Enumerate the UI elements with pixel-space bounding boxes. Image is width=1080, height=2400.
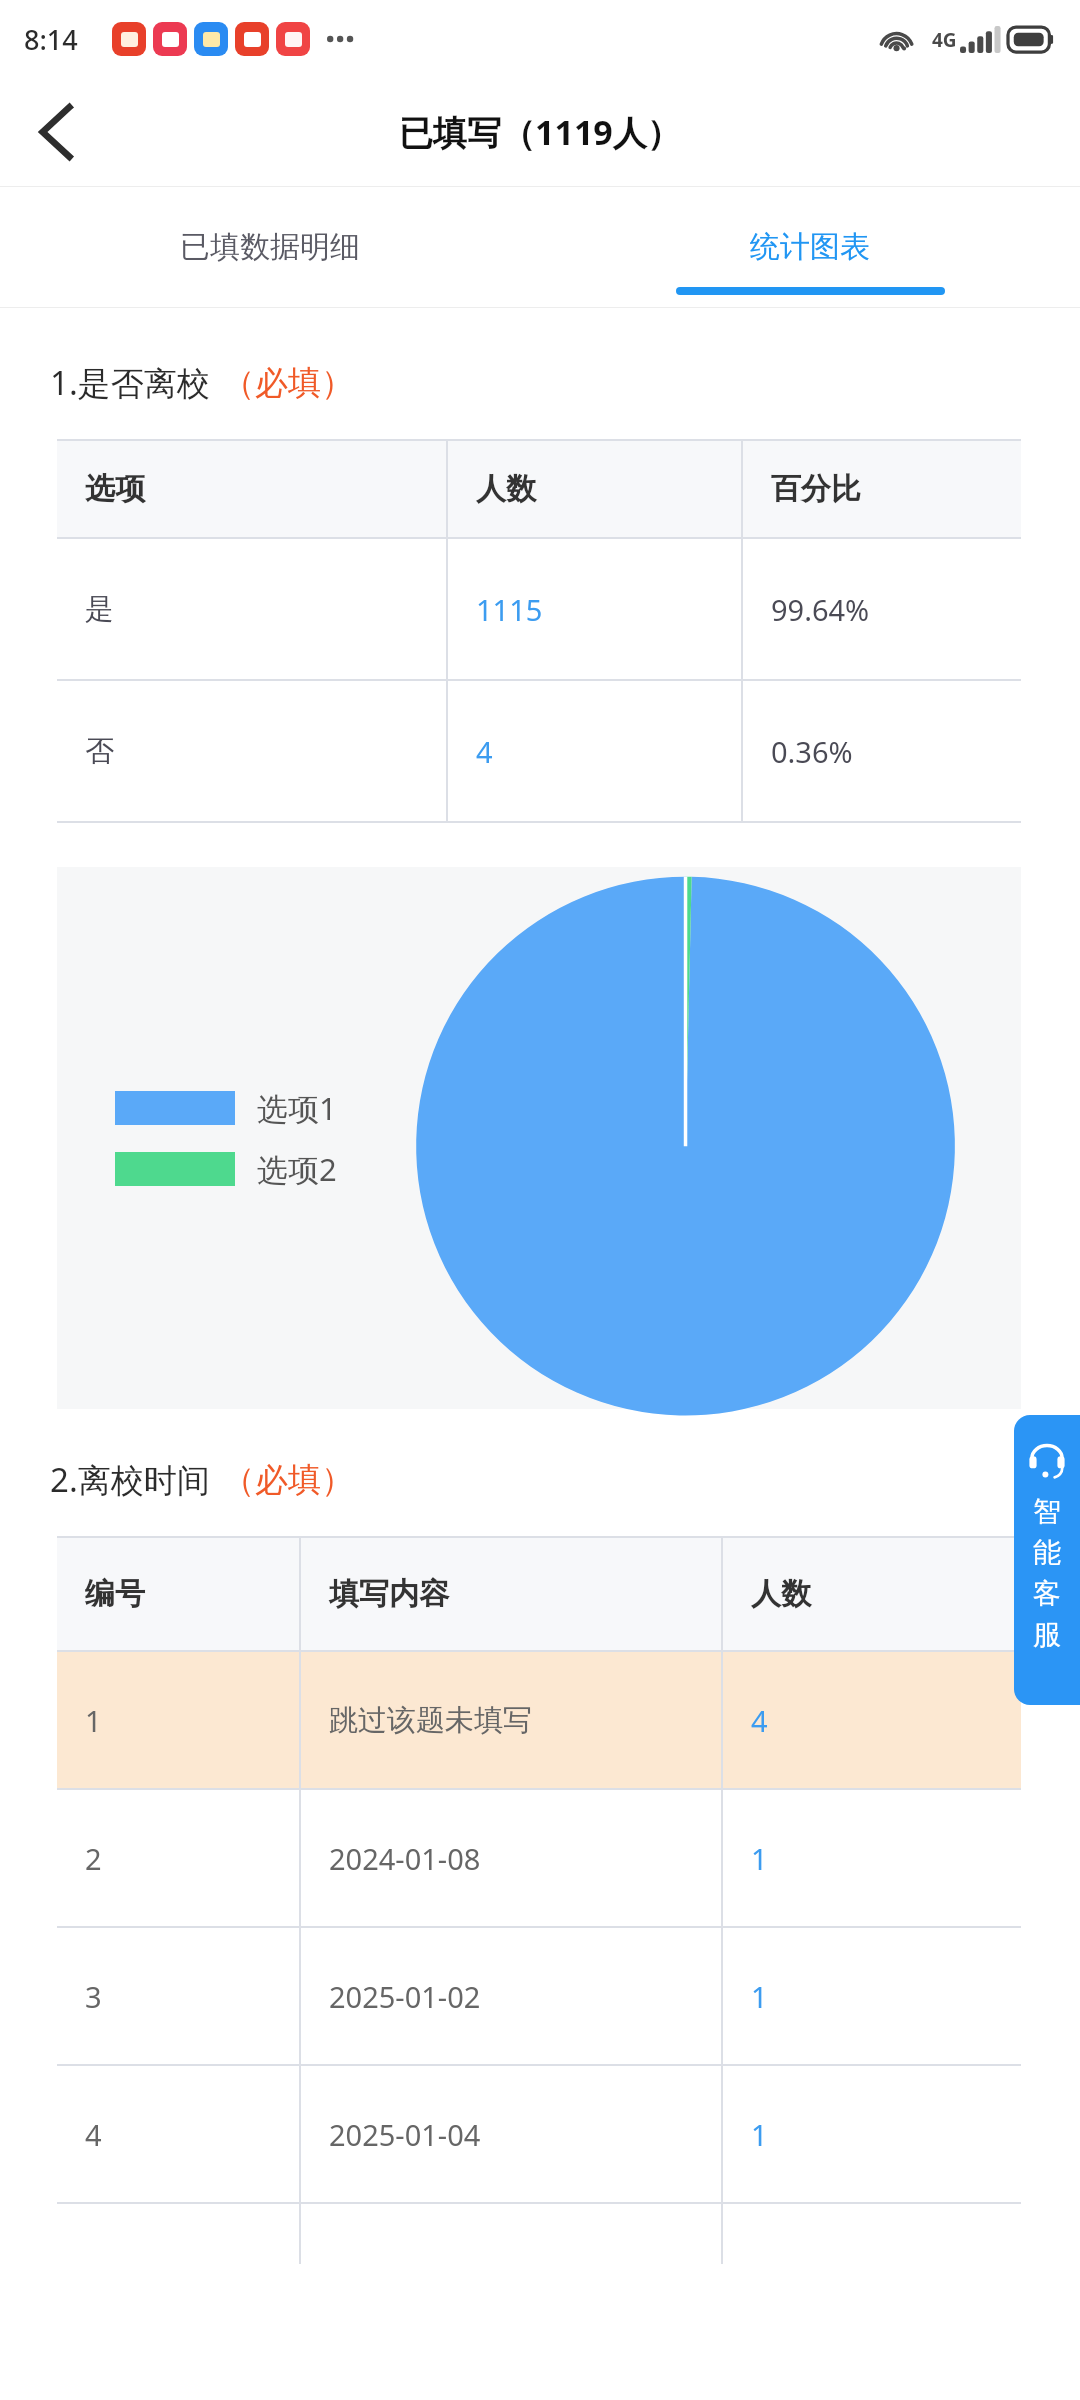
staticText: 2024-01-08 [329,1839,481,1878]
staticText: 2.离校时间 [50,1457,210,1502]
staticText: 选项 [85,470,145,508]
staticText: 8:14 [24,21,78,58]
staticText: 百分比 [771,470,861,508]
staticText: 4G [932,27,957,53]
button[interactable]: 已填数据明细 [0,187,540,307]
staticText: 统计图表 [750,228,870,266]
staticText: 跳过该题未填写 [329,1702,532,1739]
staticText: 0.36% [771,732,853,771]
staticText: 选项2 [257,1148,337,1190]
staticText: 服 [1033,1617,1061,1652]
staticText: 4 [476,732,493,771]
button[interactable]: 是 [57,539,1021,679]
staticText: 1 [85,1701,102,1740]
staticText: 已填写（1119人） [399,109,681,155]
staticText: 4 [85,2115,102,2154]
button[interactable]: 3 [57,1928,1021,2064]
staticText: 2025-01-02 [329,1977,481,2016]
staticText: 选项1 [257,1087,337,1129]
staticText: 2 [85,1839,102,1878]
staticText: 4 [751,1701,768,1740]
staticText: 3 [85,1977,102,2016]
staticText: 1115 [476,590,543,629]
button[interactable]: 2 [57,1790,1021,1926]
staticText: 智 [1033,1494,1061,1529]
staticText: 1.是否离校 [50,360,210,405]
button[interactable]: 否 [57,681,1021,821]
staticText: 人数 [751,1575,811,1613]
button[interactable]: 统计图表 [540,187,1080,307]
staticText: 编号 [85,1575,145,1613]
staticText: 已填数据明细 [180,228,360,266]
staticText: 1 [751,2115,768,2154]
staticText: 99.64% [771,590,870,629]
button[interactable]: 1 [57,1652,1021,1788]
staticText: 1 [751,1839,768,1878]
staticText: 2025-01-04 [329,2115,481,2154]
button[interactable]: 选项 [57,441,1021,537]
button[interactable]: Back [18,94,94,170]
staticText: 是 [85,591,114,628]
staticText: 人数 [476,470,536,508]
staticText: 1 [751,1977,768,2016]
staticText: （必填） [222,1459,354,1501]
staticText: 填写内容 [329,1575,449,1613]
button[interactable]: 4 [57,2066,1021,2202]
staticText: 能 [1033,1535,1061,1570]
staticText: 否 [85,733,114,770]
staticText: （必填） [222,362,354,404]
staticText: 客 [1033,1576,1061,1611]
button[interactable]: 编号 [57,1538,1021,1650]
button[interactable]: 智能客服 [1014,1415,1080,1705]
